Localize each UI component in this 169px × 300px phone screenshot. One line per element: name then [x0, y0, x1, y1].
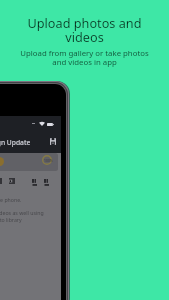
button[interactable]: Wrap text [9, 178, 15, 184]
staticText: to upload them from the phone. [0, 196, 22, 203]
button[interactable]: Save [47, 135, 59, 147]
staticText: Design Update [0, 138, 31, 147]
staticText: 100% [44, 158, 53, 163]
staticText: the device photo library [0, 216, 22, 223]
button[interactable]: Align text [32, 179, 37, 186]
staticText: upload photos and videos as well using [0, 209, 44, 216]
button[interactable]: Align text [44, 179, 49, 186]
staticText: Upload from gallery or take photos and v… [17, 48, 152, 67]
staticText: Upload photos and videos [22, 14, 147, 46]
